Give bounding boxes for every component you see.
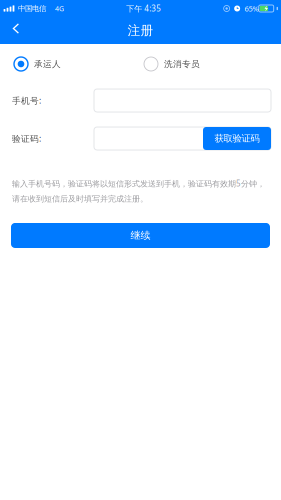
staticText: 下午 4:35 <box>126 3 161 14</box>
button[interactable]: 继续 <box>11 223 270 248</box>
button[interactable]: 承运人 <box>13 55 61 73</box>
staticText: 中国电信 <box>18 4 46 13</box>
button[interactable]: 获取验证码 <box>203 127 271 150</box>
button[interactable]: 洗消专员 <box>143 55 200 73</box>
staticText: 继续 <box>130 229 150 242</box>
staticText: 输入手机号码，验证码将以短信形式发送到手机，验证码有效期5分钟， <box>12 178 265 189</box>
staticText: 手机号: <box>12 95 41 106</box>
staticText: 验证码: <box>12 133 41 144</box>
staticText: 请在收到短信后及时填写并完成注册。 <box>12 194 148 204</box>
staticText: 注册 <box>127 22 153 38</box>
staticText: 65% <box>244 3 258 14</box>
button[interactable]: Back <box>0 17 40 44</box>
staticText: 4G <box>55 4 64 13</box>
staticText: 承运人 <box>34 58 61 69</box>
staticText: 获取验证码 <box>214 133 259 144</box>
staticText: 洗消专员 <box>164 58 200 69</box>
